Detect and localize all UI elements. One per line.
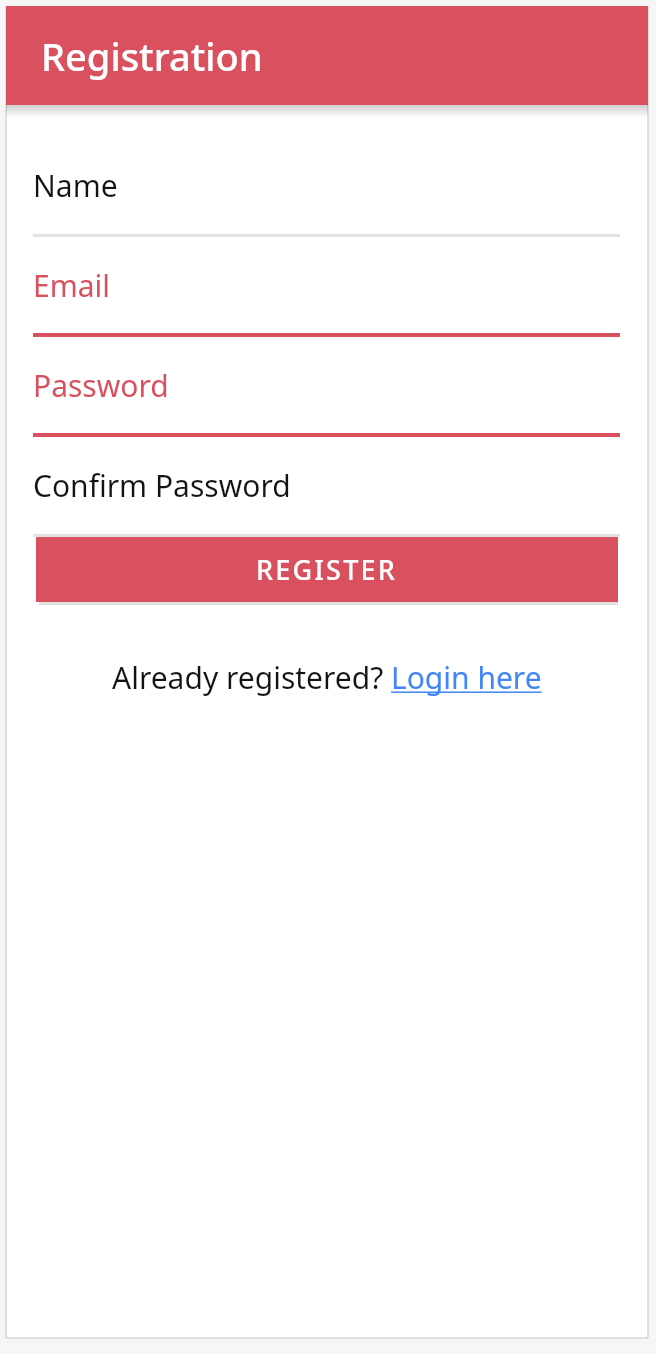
staticText: Confirm Password <box>33 465 291 506</box>
staticText: Already registered? <box>112 657 391 698</box>
staticText: Registration <box>41 30 263 82</box>
staticText: Name <box>33 165 118 206</box>
button[interactable]: Password <box>33 337 620 437</box>
button[interactable]: Name <box>33 137 620 237</box>
staticText: Email <box>33 265 111 306</box>
staticText: Login here <box>391 657 542 698</box>
staticText: REGISTER <box>256 551 398 588</box>
button[interactable]: REGISTER <box>36 537 618 602</box>
button[interactable]: Confirm Password <box>33 437 620 537</box>
button[interactable]: Email <box>33 237 620 337</box>
button[interactable]: Login here <box>391 657 542 698</box>
staticText: Password <box>33 365 169 406</box>
